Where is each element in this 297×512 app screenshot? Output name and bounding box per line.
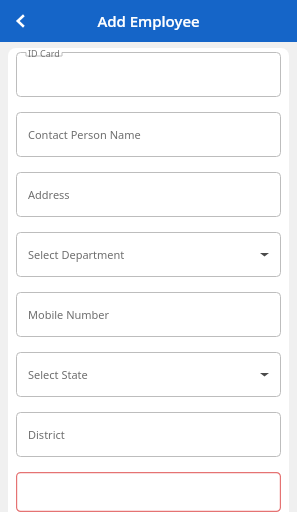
staticText: Contact Person Name xyxy=(28,127,141,142)
staticText: Add Employee xyxy=(97,11,200,31)
staticText: Select Department xyxy=(28,247,125,262)
button[interactable]: Select State xyxy=(16,352,281,397)
button[interactable]: ID Card xyxy=(16,52,281,97)
button[interactable] xyxy=(16,472,281,512)
button[interactable]: Mobile Number xyxy=(16,292,281,337)
button[interactable]: Back xyxy=(4,4,38,38)
staticText: ID Card xyxy=(28,48,60,59)
staticText: Mobile Number xyxy=(28,307,110,322)
staticText: Address xyxy=(28,187,70,202)
button[interactable]: Address xyxy=(16,172,281,217)
button[interactable]: Contact Person Name xyxy=(16,112,281,157)
button[interactable]: District xyxy=(16,412,281,457)
staticText: District xyxy=(28,427,65,442)
staticText: Select State xyxy=(28,367,88,382)
button[interactable]: Select Department xyxy=(16,232,281,277)
